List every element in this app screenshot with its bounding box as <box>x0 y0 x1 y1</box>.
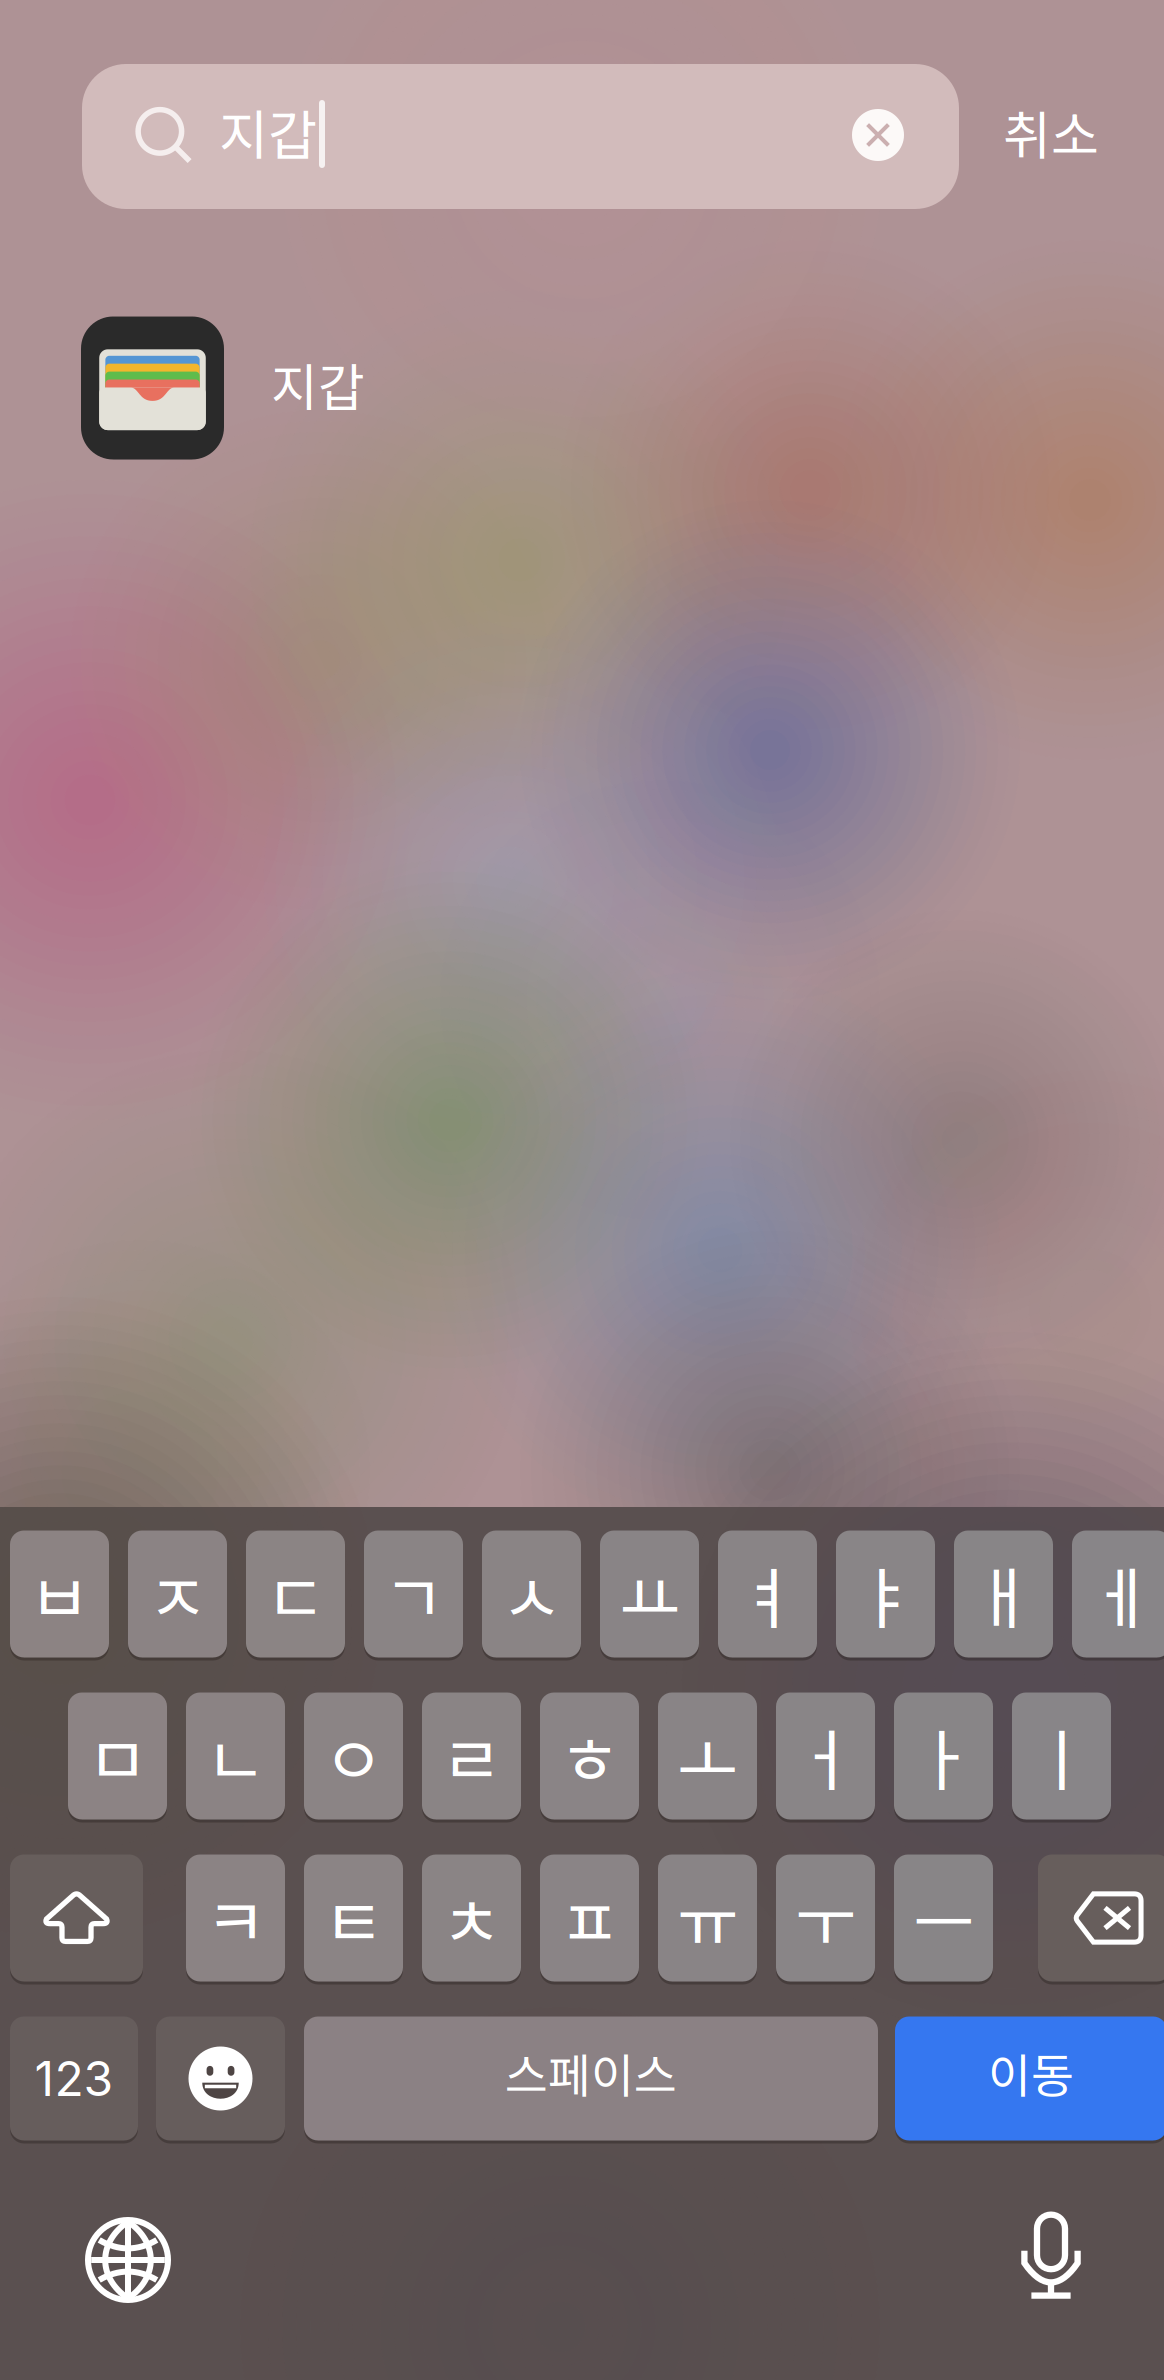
button[interactable]: ㅕ <box>0 0 1164 2380</box>
staticText: ㅈ <box>147 1546 208 1642</box>
button[interactable]: Emoji <box>0 0 1164 2380</box>
button[interactable]: ㄷ <box>0 0 1164 2380</box>
button[interactable]: ㅏ <box>0 0 1164 2380</box>
button[interactable]: 취소 <box>971 77 1131 187</box>
staticText: ㅂ <box>29 1546 90 1642</box>
button[interactable]: ㅍ <box>0 0 1164 2380</box>
button[interactable]: ㅂ <box>0 0 1164 2380</box>
staticText: 이동 <box>988 2039 1074 2106</box>
button[interactable]: ㅜ <box>0 0 1164 2380</box>
staticText: ㅗ <box>677 1708 738 1804</box>
staticText: 스페이스 <box>505 2039 677 2106</box>
staticText: ㅜ <box>795 1870 856 1966</box>
staticText: ㅕ <box>737 1546 798 1642</box>
staticText: 지갑 <box>271 347 365 421</box>
staticText: ㅛ <box>619 1546 680 1642</box>
button[interactable]: ㅎ <box>0 0 1164 2380</box>
staticText: ㅁ <box>87 1708 148 1804</box>
button[interactable]: Change keyboard <box>63 2195 193 2325</box>
staticText: ㄴ <box>205 1708 266 1804</box>
staticText: ㅇ <box>323 1708 384 1804</box>
button[interactable]: ㄹ <box>0 0 1164 2380</box>
button[interactable]: ㅔ <box>0 0 1164 2380</box>
staticText: 123 <box>34 2049 113 2108</box>
button[interactable]: ㅐ <box>0 0 1164 2380</box>
button[interactable]: ㅈ <box>0 0 1164 2380</box>
button[interactable]: 지갑 <box>81 315 1081 461</box>
staticText: ㅣ <box>1031 1708 1092 1804</box>
button[interactable]: ㄱ <box>0 0 1164 2380</box>
button[interactable]: ㅌ <box>0 0 1164 2380</box>
staticText: ㅓ <box>795 1708 856 1804</box>
button[interactable]: 이동 <box>0 0 1164 2380</box>
button[interactable]: ㅊ <box>0 0 1164 2380</box>
staticText: ㅊ <box>441 1870 502 1966</box>
staticText: 지갑 <box>219 93 317 170</box>
staticText: ㅐ <box>973 1546 1034 1642</box>
button[interactable]: Shift <box>0 0 1164 2380</box>
staticText: ㅠ <box>677 1870 738 1966</box>
button[interactable]: ㅁ <box>0 0 1164 2380</box>
button[interactable]: 스페이스 <box>0 0 1164 2380</box>
staticText: ㅌ <box>323 1870 384 1966</box>
staticText: 취소 <box>1003 94 1099 170</box>
button[interactable]: ㄴ <box>0 0 1164 2380</box>
staticText: ㄹ <box>441 1708 502 1804</box>
button[interactable]: Clear text <box>830 87 926 183</box>
staticText: ㄷ <box>265 1546 326 1642</box>
staticText: ㅍ <box>559 1870 620 1966</box>
button[interactable]: ㅗ <box>0 0 1164 2380</box>
button[interactable]: ㅇ <box>0 0 1164 2380</box>
button[interactable]: ㅅ <box>0 0 1164 2380</box>
button[interactable]: 123 <box>0 0 1164 2380</box>
button[interactable]: ㅣ <box>0 0 1164 2380</box>
button[interactable]: ㅋ <box>0 0 1164 2380</box>
staticText: ㅋ <box>205 1870 266 1966</box>
staticText: ㅅ <box>501 1546 562 1642</box>
staticText: ㅡ <box>913 1870 974 1966</box>
button[interactable]: Dictate <box>986 2191 1116 2321</box>
staticText: ㄱ <box>383 1546 444 1642</box>
button[interactable]: Delete <box>0 0 1164 2380</box>
button[interactable]: ㅠ <box>0 0 1164 2380</box>
staticText: ㅎ <box>559 1708 620 1804</box>
staticText: ㅏ <box>913 1708 974 1804</box>
button[interactable]: ㅡ <box>0 0 1164 2380</box>
button[interactable]: ㅛ <box>0 0 1164 2380</box>
button[interactable]: ㅓ <box>0 0 1164 2380</box>
staticText: ㅑ <box>855 1546 916 1642</box>
staticText: ㅔ <box>1091 1546 1152 1642</box>
button[interactable]: ㅑ <box>0 0 1164 2380</box>
